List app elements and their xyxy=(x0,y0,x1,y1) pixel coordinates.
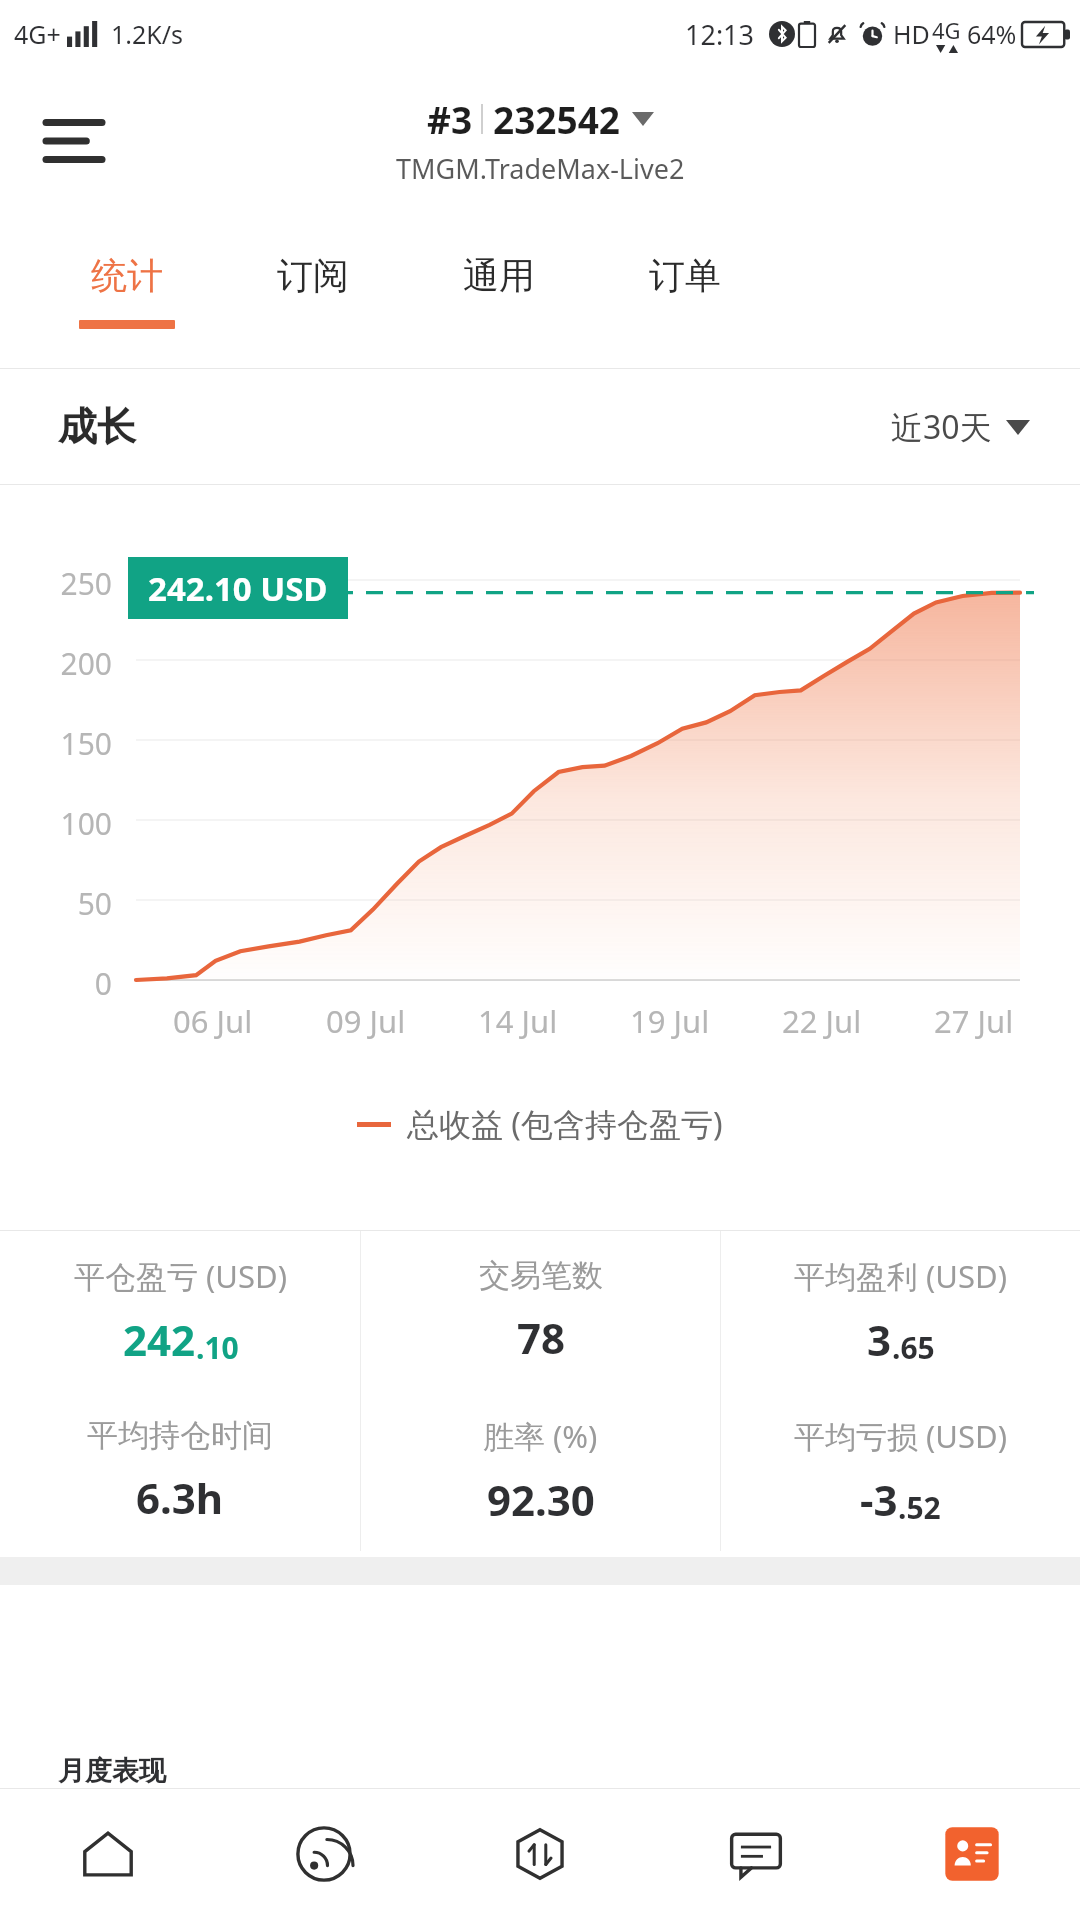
button[interactable]: 平均亏损 (USD) xyxy=(721,1391,1080,1551)
staticText: 4G xyxy=(932,15,961,45)
staticText: 总收益 (包含持仓盈亏) xyxy=(407,1102,723,1146)
staticText: 200 xyxy=(0,643,112,684)
staticText: 27 Jul xyxy=(934,1000,1014,1042)
button[interactable]: Home xyxy=(0,1788,216,1920)
staticText: .65 xyxy=(892,1327,935,1368)
staticText: 250 xyxy=(0,563,112,604)
staticText: 242 xyxy=(123,1311,196,1368)
staticText: 12:13 xyxy=(685,16,755,53)
staticText: 14 Jul xyxy=(478,1000,558,1042)
staticText: 150 xyxy=(0,723,112,764)
staticText: -3 xyxy=(860,1471,898,1528)
button[interactable]: Profile xyxy=(864,1788,1080,1920)
staticText: 78 xyxy=(517,1309,566,1366)
staticText: 100 xyxy=(0,803,112,844)
staticText: 月度表现 xyxy=(58,1754,166,1788)
button[interactable]: 近30天 xyxy=(891,405,1030,449)
staticText: 平均盈利 (USD) xyxy=(794,1255,1007,1297)
staticText: 92.30 xyxy=(487,1471,595,1528)
staticText: 4G+ xyxy=(14,17,61,51)
button[interactable]: 统计 xyxy=(34,213,220,368)
button[interactable]: 通用 xyxy=(406,213,592,368)
button[interactable]: 胜率 (%) xyxy=(361,1391,720,1551)
staticText: 50 xyxy=(0,883,112,924)
staticText: 交易笔数 xyxy=(479,1256,603,1295)
button[interactable]: 平仓盈亏 (USD) xyxy=(0,1231,360,1391)
staticText: 3 xyxy=(867,1311,892,1368)
button[interactable]: Trade xyxy=(432,1788,648,1920)
button[interactable]: #3 xyxy=(396,94,685,187)
staticText: 242.10 USD xyxy=(148,566,328,611)
staticText: .52 xyxy=(898,1487,941,1528)
staticText: 平仓盈亏 (USD) xyxy=(74,1255,287,1297)
staticText: 22 Jul xyxy=(782,1000,862,1042)
button[interactable]: 平均盈利 (USD) xyxy=(721,1231,1080,1391)
staticText: 09 Jul xyxy=(326,1000,406,1042)
button[interactable]: Menu xyxy=(38,105,110,177)
button[interactable]: 订阅 xyxy=(220,213,406,368)
staticText: HD xyxy=(893,17,930,51)
button[interactable]: 交易笔数 xyxy=(361,1231,720,1391)
button[interactable]: 平均持仓时间 xyxy=(0,1391,360,1551)
staticText: #3 xyxy=(427,94,473,144)
staticText: 平均亏损 (USD) xyxy=(794,1415,1007,1457)
staticText: 近30天 xyxy=(891,405,992,449)
button[interactable]: Chat xyxy=(648,1788,864,1920)
staticText: 统计 xyxy=(91,253,163,298)
staticText: 6.3h xyxy=(136,1469,224,1526)
staticText: 平均持仓时间 xyxy=(87,1416,273,1455)
staticText: 232542 xyxy=(493,94,620,144)
staticText: 64% xyxy=(967,17,1017,51)
staticText: 19 Jul xyxy=(630,1000,710,1042)
staticText: 订单 xyxy=(649,253,721,298)
staticText: 订阅 xyxy=(277,253,349,298)
staticText: .10 xyxy=(196,1327,239,1368)
staticText: 1.2K/s xyxy=(111,17,184,51)
staticText: 胜率 (%) xyxy=(483,1415,598,1457)
staticText: 成长 xyxy=(58,402,136,451)
staticText: 06 Jul xyxy=(173,1000,253,1042)
staticText: TMGM.TradeMax-Live2 xyxy=(396,150,685,187)
staticText: 0 xyxy=(0,963,112,1004)
button[interactable]: 订单 xyxy=(592,213,778,368)
staticText: 通用 xyxy=(463,253,535,298)
button[interactable]: Signals xyxy=(216,1788,432,1920)
